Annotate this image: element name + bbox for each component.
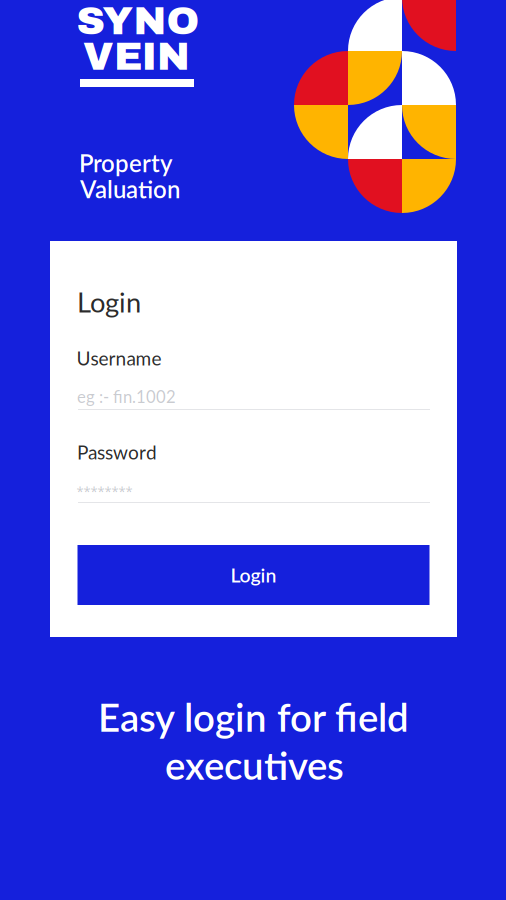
staticText: Username bbox=[76, 347, 161, 369]
staticText: Password bbox=[77, 441, 157, 463]
staticText: Login bbox=[230, 563, 276, 587]
staticText: Property bbox=[79, 149, 173, 177]
staticText: Easy login for field bbox=[98, 694, 409, 740]
staticText: executives bbox=[165, 742, 344, 788]
staticText: SYNO bbox=[76, 0, 199, 42]
staticText: Login bbox=[77, 286, 141, 318]
staticText: Valuation bbox=[80, 175, 180, 203]
button[interactable]: Login bbox=[77, 545, 429, 605]
staticText: ******** bbox=[76, 483, 132, 500]
staticText: VEIN bbox=[83, 35, 190, 78]
staticText: eg :- fin.1002 bbox=[77, 386, 176, 406]
